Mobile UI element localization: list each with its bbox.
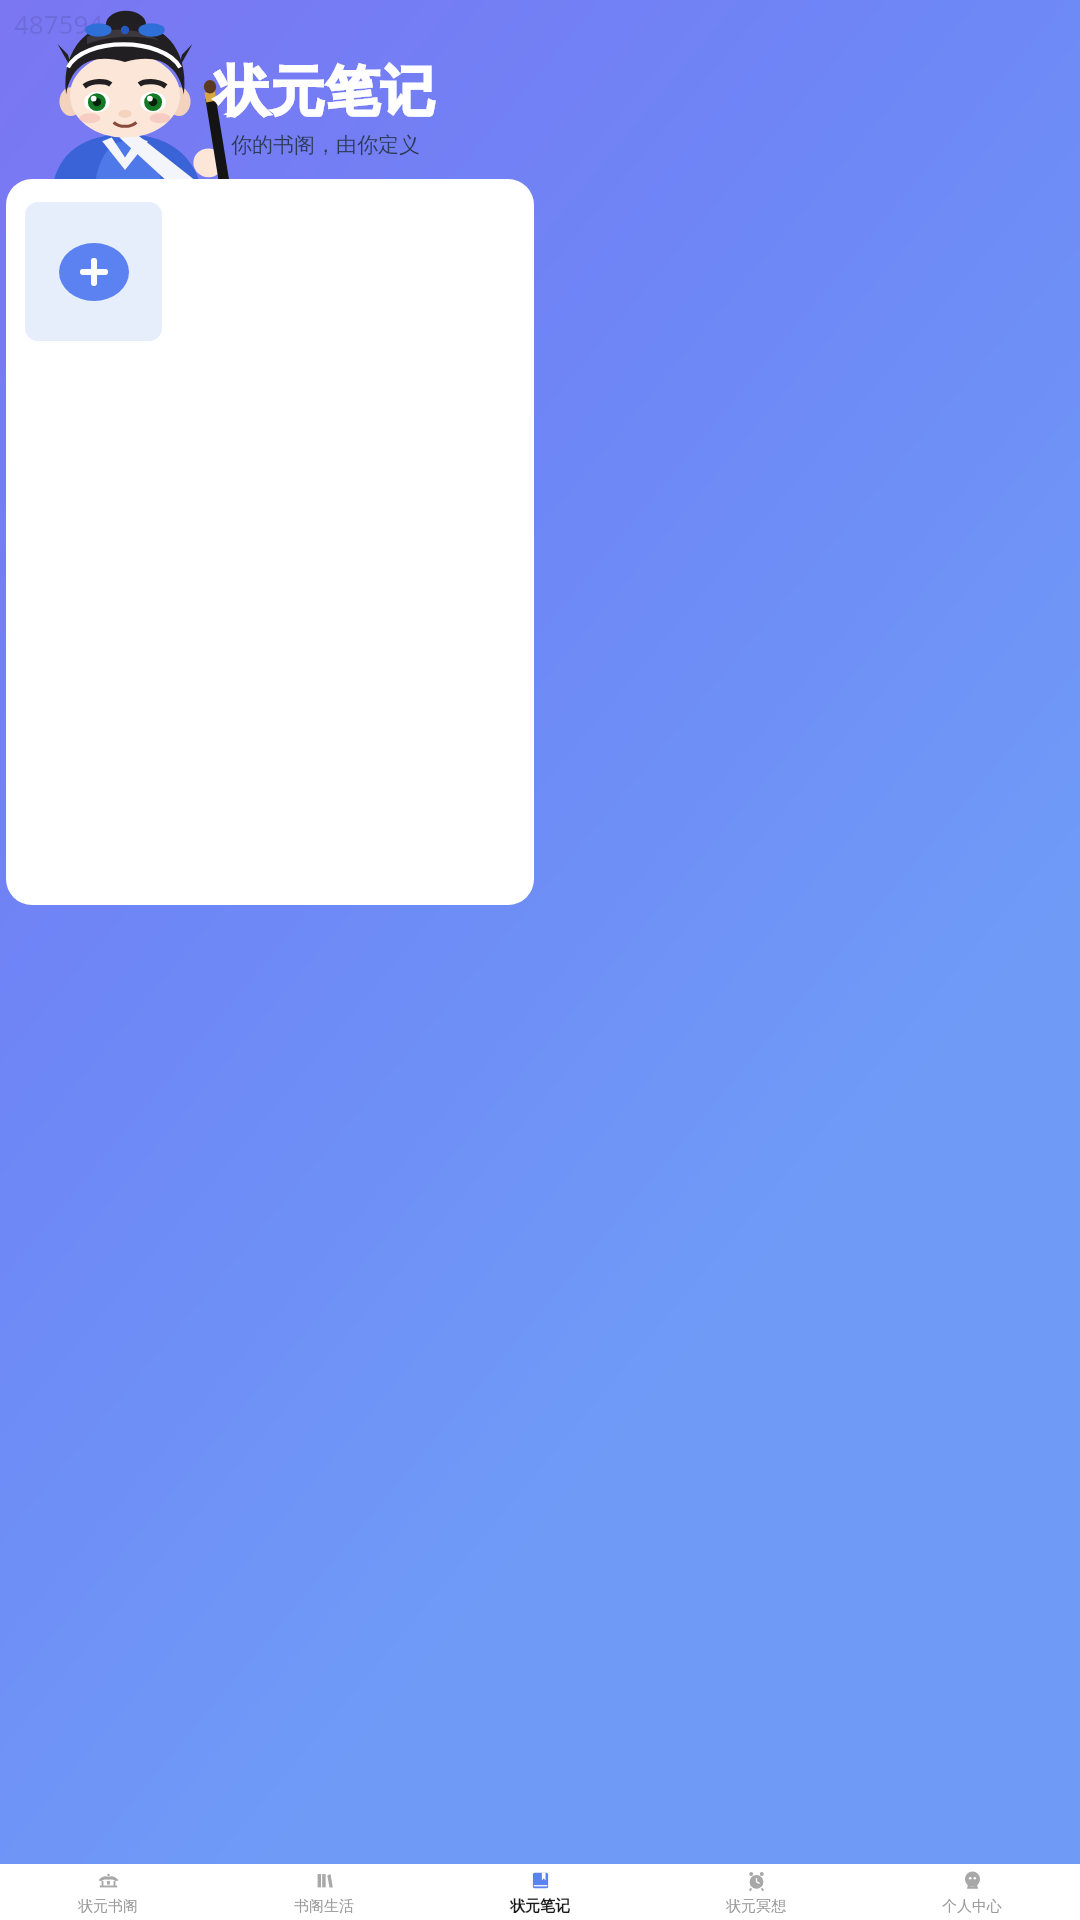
staticText: 状元笔记 [215, 58, 435, 126]
staticText: 状元笔记 [510, 1897, 570, 1916]
staticText: 状元书阁 [78, 1897, 138, 1916]
staticText: 个人中心 [942, 1897, 1002, 1916]
staticText: 487594-B [14, 6, 129, 41]
button[interactable]: 状元冥想 [648, 1864, 864, 1920]
staticText: 状元冥想 [726, 1897, 786, 1916]
button[interactable]: 个人中心 [864, 1864, 1080, 1920]
staticText: 书阁生活 [294, 1897, 354, 1916]
button[interactable]: 书阁生活 [216, 1864, 432, 1920]
button[interactable]: 新建笔记 [25, 202, 162, 341]
button[interactable]: 状元书阁 [0, 1864, 216, 1920]
staticText: 你的书阁，由你定义 [231, 132, 420, 158]
button[interactable]: 状元笔记 [432, 1864, 648, 1920]
